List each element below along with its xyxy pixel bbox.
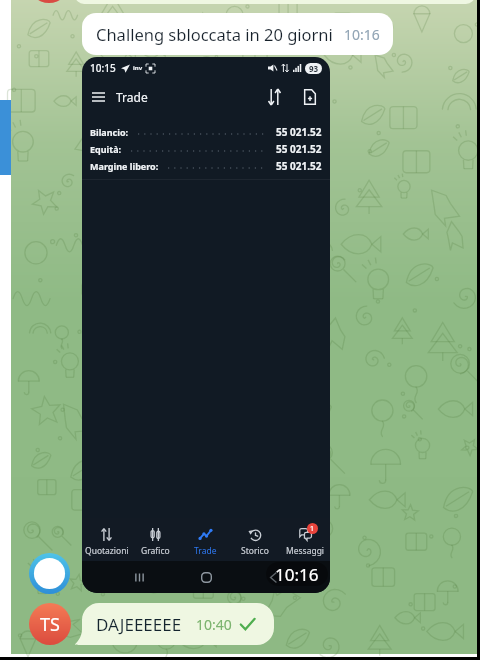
- staticText: 10:16: [344, 25, 380, 44]
- staticText: 1: [310, 524, 315, 534]
- button[interactable]: New order: [297, 84, 323, 110]
- staticText: 10:15: [90, 61, 116, 75]
- staticText: Trade: [116, 89, 148, 105]
- staticText: TS: [40, 612, 60, 637]
- button[interactable]: Challeng sbloccata in 20 giorni: [82, 13, 393, 55]
- staticText: 55 021.52: [276, 125, 322, 139]
- button[interactable]: DAJEEEEEE: [75, 603, 274, 645]
- staticText: inv: [133, 64, 143, 72]
- button[interactable]: Recents: [128, 566, 150, 588]
- staticText: 93: [309, 63, 319, 74]
- other: Avatar: [29, 553, 70, 594]
- staticText: Bilancio:: [90, 126, 129, 138]
- button[interactable]: Trade: [180, 522, 230, 557]
- staticText: Trade: [194, 545, 217, 557]
- button[interactable]: Sort: [261, 84, 287, 110]
- staticText: Margine libero:: [90, 160, 159, 172]
- button[interactable]: Menu: [87, 86, 109, 108]
- button[interactable]: TS: [29, 603, 71, 645]
- staticText: 55 021.52: [276, 142, 322, 156]
- staticText: 10:40: [196, 615, 232, 634]
- staticText: 10:16: [275, 563, 319, 586]
- staticText: Messaggi: [286, 545, 325, 557]
- button[interactable]: 10:15: [82, 57, 330, 593]
- button[interactable]: 1: [280, 522, 330, 557]
- staticText: Grafico: [141, 545, 170, 557]
- button[interactable]: Storico: [230, 522, 280, 557]
- staticText: Equità:: [90, 143, 122, 155]
- staticText: 55 021.52: [276, 159, 322, 173]
- staticText: Storico: [241, 545, 269, 557]
- staticText: DAJEEEEEE: [96, 613, 182, 636]
- staticText: Challeng sbloccata in 20 giorni: [96, 23, 333, 45]
- staticText: Quotazioni: [85, 545, 129, 557]
- button[interactable]: Back: [263, 566, 285, 588]
- button[interactable]: Home: [195, 566, 217, 588]
- button[interactable]: Grafico: [131, 522, 180, 557]
- button[interactable]: Quotazioni: [82, 522, 131, 557]
